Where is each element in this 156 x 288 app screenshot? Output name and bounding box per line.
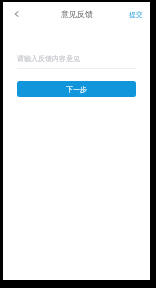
- button[interactable]: 下一步: [17, 81, 136, 97]
- staticText: 下一步: [66, 85, 87, 94]
- staticText: 提交: [129, 10, 143, 19]
- button[interactable]: Back: [9, 6, 25, 22]
- staticText: 请输入反馈内容意见: [17, 54, 80, 63]
- staticText: 意见反馈: [61, 9, 93, 19]
- button[interactable]: 请输入反馈内容意见: [17, 51, 136, 69]
- button[interactable]: 提交: [122, 6, 150, 23]
